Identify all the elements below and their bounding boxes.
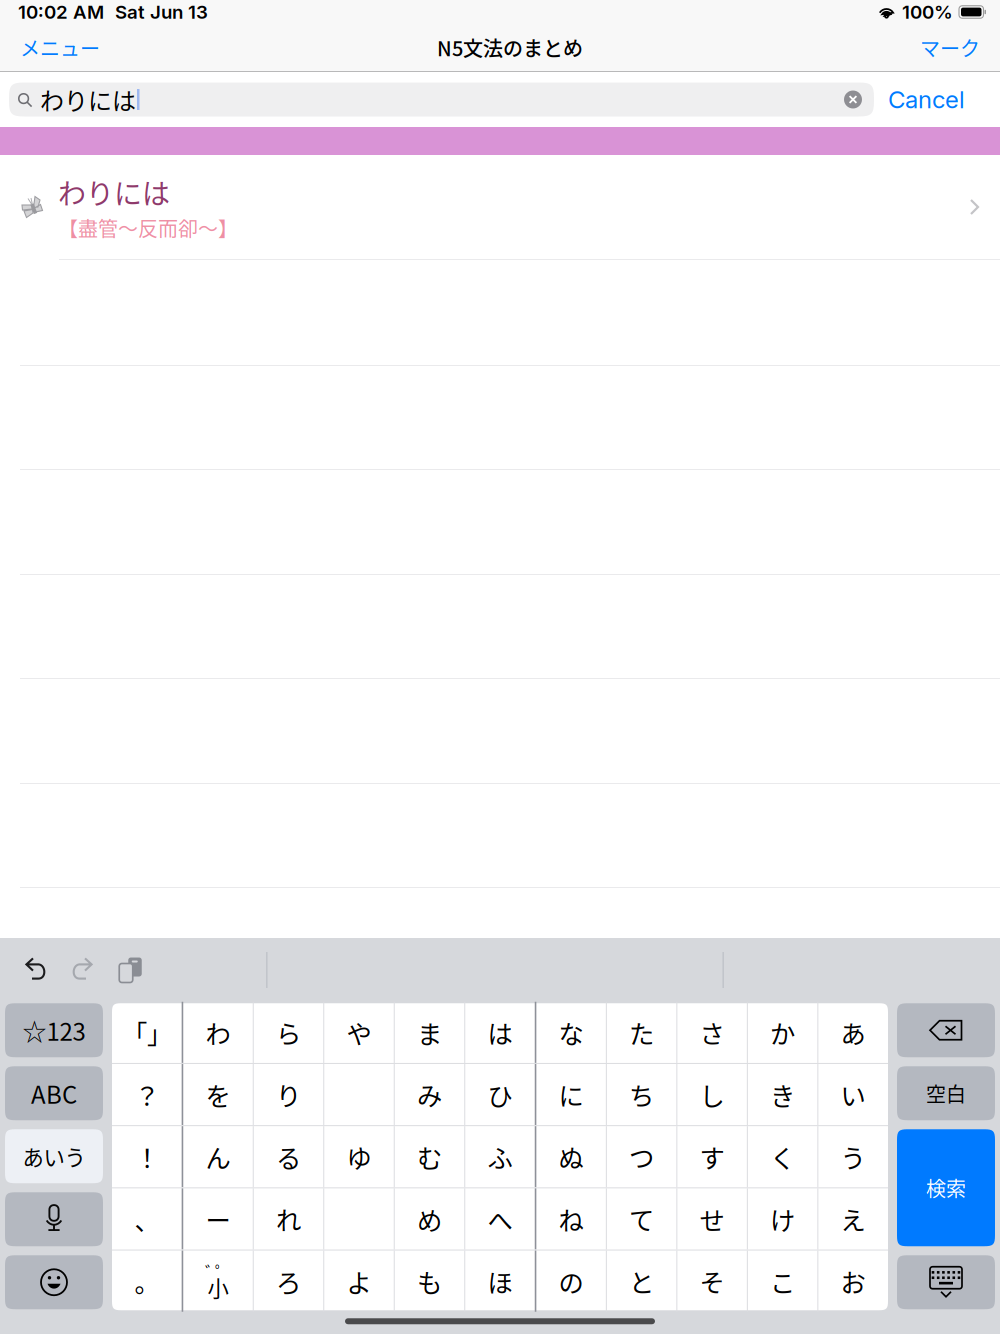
staticText: は: [487, 1014, 512, 1051]
button[interactable]: く: [748, 1126, 817, 1187]
button[interactable]: Paste: [107, 957, 154, 983]
button[interactable]: い: [818, 1064, 888, 1125]
button[interactable]: 「」: [112, 1002, 182, 1063]
button[interactable]: Clear text: [844, 90, 874, 108]
button[interactable]: め: [395, 1188, 464, 1249]
button[interactable]: メニュー: [0, 24, 120, 71]
button[interactable]: う: [818, 1126, 888, 1187]
staticText: わりには: [40, 82, 136, 117]
staticText: ぬ: [559, 1138, 584, 1175]
button[interactable]: や: [324, 1002, 394, 1063]
button[interactable]: し: [677, 1064, 747, 1125]
button[interactable]: へ: [465, 1188, 535, 1249]
button[interactable]: も: [395, 1250, 464, 1312]
button[interactable]: た: [607, 1002, 676, 1063]
staticText: や: [346, 1014, 371, 1051]
button[interactable]: せ: [677, 1188, 747, 1249]
button[interactable]: ら: [254, 1002, 323, 1063]
button[interactable]: マーク: [900, 24, 1000, 71]
staticText: し: [700, 1076, 725, 1113]
button[interactable]: 空白: [897, 1066, 995, 1120]
button[interactable]: き: [748, 1064, 817, 1125]
staticText: N5文法のまとめ: [437, 33, 583, 62]
button[interactable]: け: [748, 1188, 817, 1249]
button[interactable]: り: [254, 1064, 323, 1125]
button[interactable]: に: [536, 1064, 606, 1125]
button[interactable]: ー: [183, 1188, 253, 1249]
staticText: ☆123: [22, 1013, 85, 1048]
button[interactable]: 検索: [897, 1129, 995, 1246]
button[interactable]: ち: [607, 1064, 676, 1125]
button[interactable]: ！: [112, 1126, 182, 1187]
staticText: ゜: [215, 1260, 231, 1283]
button[interactable]: む: [395, 1126, 464, 1187]
button[interactable]: の: [536, 1250, 606, 1312]
button[interactable]: ゆ: [324, 1126, 394, 1187]
staticText: お: [841, 1263, 866, 1299]
staticText: む: [417, 1138, 442, 1175]
button[interactable]: み: [395, 1064, 464, 1125]
staticText: わ: [205, 1014, 230, 1051]
button[interactable]: こ: [748, 1250, 817, 1312]
button[interactable]: Dictation: [5, 1192, 103, 1246]
button[interactable]: ？: [112, 1064, 182, 1125]
button[interactable]: あいう: [5, 1129, 103, 1183]
staticText: 小: [207, 1272, 228, 1303]
button[interactable]: ABC: [5, 1066, 103, 1120]
staticText: 、: [134, 1201, 159, 1237]
button[interactable]: か: [748, 1002, 817, 1063]
button[interactable]: ね: [536, 1188, 606, 1249]
button[interactable]: わりには: [0, 155, 1000, 260]
button[interactable]: わ: [183, 1002, 253, 1063]
button[interactable]: て: [607, 1188, 676, 1249]
button[interactable]: ろ: [254, 1250, 323, 1312]
button[interactable]: Undo: [0, 957, 60, 983]
staticText: の: [559, 1263, 584, 1299]
staticText: い: [841, 1076, 866, 1113]
button[interactable]: Redo: [60, 957, 107, 983]
button[interactable]: ひ: [465, 1064, 535, 1125]
button[interactable]: ん: [183, 1126, 253, 1187]
button[interactable]: ☆123: [5, 1003, 103, 1057]
button[interactable]: ま: [395, 1002, 464, 1063]
button[interactable]: え: [818, 1188, 888, 1249]
button[interactable]: ゛: [183, 1250, 253, 1312]
staticText: 「」: [122, 1014, 172, 1051]
button[interactable]: そ: [677, 1250, 747, 1312]
staticText: Cancel: [888, 85, 965, 114]
button[interactable]: る: [254, 1126, 323, 1187]
staticText: な: [559, 1014, 584, 1051]
staticText: ゛: [205, 1260, 221, 1283]
staticText: ん: [205, 1138, 230, 1175]
button[interactable]: あ: [818, 1002, 888, 1063]
staticText: み: [417, 1076, 442, 1113]
button[interactable]: 。: [112, 1250, 182, 1312]
button[interactable]: さ: [677, 1002, 747, 1063]
button[interactable]: Delete: [897, 1003, 995, 1057]
button[interactable]: Emoji: [5, 1255, 103, 1309]
button[interactable]: ほ: [465, 1250, 535, 1312]
button[interactable]: れ: [254, 1188, 323, 1249]
staticText: せ: [700, 1201, 725, 1237]
button[interactable]: よ: [324, 1250, 394, 1312]
button[interactable]: は: [465, 1002, 535, 1063]
button[interactable]: と: [607, 1250, 676, 1312]
staticText: く: [770, 1138, 795, 1175]
staticText: 検索: [926, 1173, 966, 1202]
button[interactable]: つ: [607, 1126, 676, 1187]
staticText: ふ: [487, 1138, 512, 1175]
button[interactable]: な: [536, 1002, 606, 1063]
staticText: ？: [134, 1076, 159, 1113]
button[interactable]: ぬ: [536, 1126, 606, 1187]
button[interactable]: を: [183, 1064, 253, 1125]
button[interactable]: Cancel: [874, 82, 965, 116]
staticText: メニュー: [20, 33, 100, 62]
button[interactable]: お: [818, 1250, 888, 1312]
button[interactable]: す: [677, 1126, 747, 1187]
button[interactable]: 、: [112, 1188, 182, 1249]
button[interactable]: Dismiss keyboard: [897, 1255, 995, 1309]
button[interactable]: ふ: [465, 1126, 535, 1187]
